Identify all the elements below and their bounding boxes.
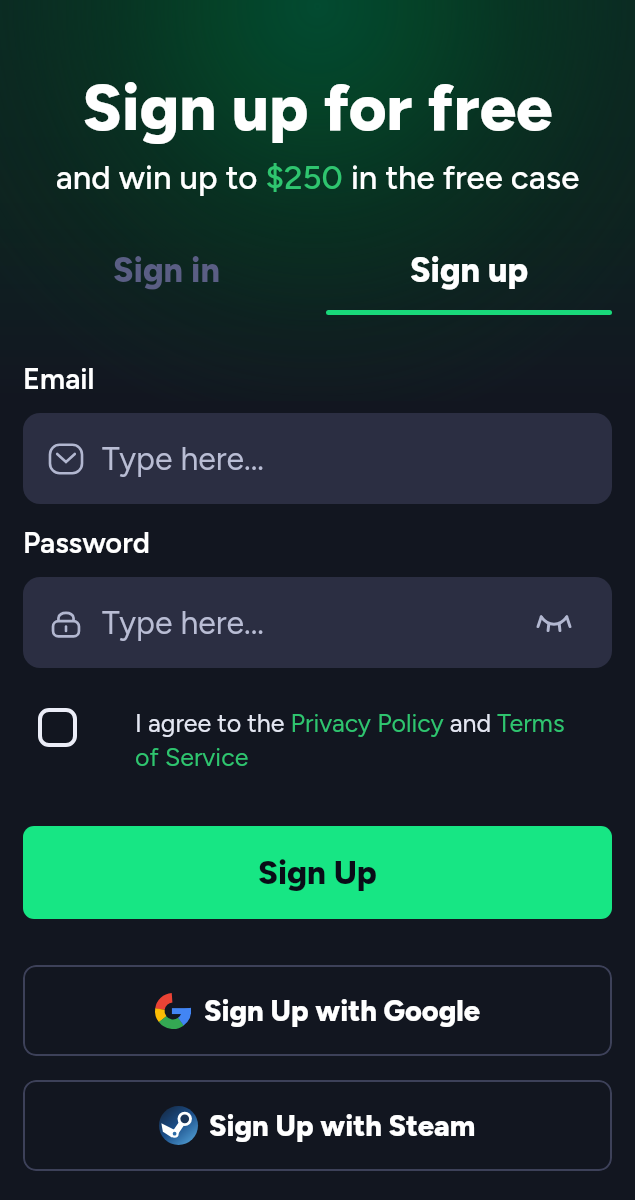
button[interactable]: Sign Up with Google <box>23 965 612 1056</box>
button[interactable]: Type here... <box>23 413 612 504</box>
staticText: Type here... <box>102 604 264 642</box>
button[interactable]: Sign up <box>326 250 612 315</box>
button[interactable]: Type here... <box>23 577 612 668</box>
staticText: Type here... <box>102 440 264 478</box>
staticText: Sign Up with Google <box>204 993 481 1028</box>
staticText: Sign Up <box>258 853 377 893</box>
staticText: I agree to the Privacy Policy and Terms … <box>135 708 581 772</box>
staticText: Sign Up with Steam <box>209 1108 476 1143</box>
button[interactable]: Sign in <box>23 250 309 315</box>
button[interactable]: I agree to the Privacy Policy and Terms … <box>23 708 612 772</box>
button[interactable]: Show password <box>536 605 572 641</box>
staticText: Sign in <box>113 250 220 291</box>
staticText: Sign up <box>410 250 529 291</box>
button[interactable]: Sign Up with Steam <box>23 1080 612 1171</box>
button[interactable]: Sign Up <box>23 826 612 919</box>
staticText: Email <box>23 361 95 396</box>
staticText: Password <box>23 525 150 560</box>
staticText: Sign up for free <box>0 68 635 146</box>
staticText: and win up to $250 in the free case <box>0 158 635 198</box>
